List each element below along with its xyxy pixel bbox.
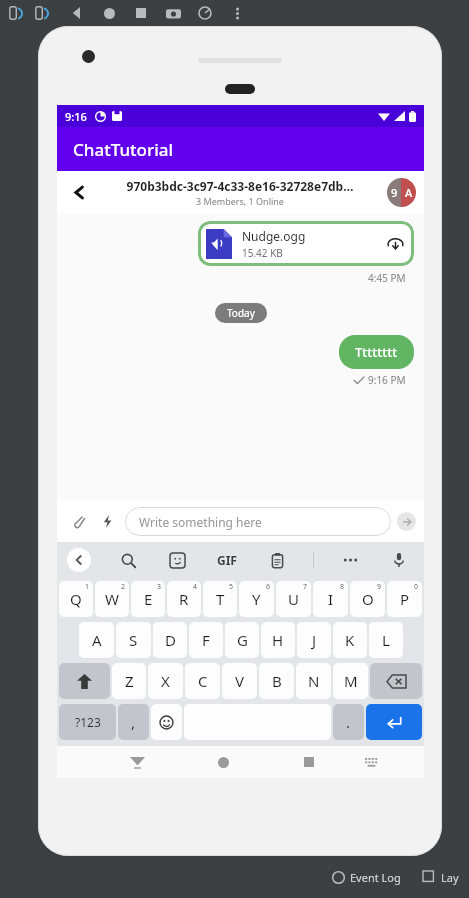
- button[interactable]: C: [185, 663, 220, 699]
- button[interactable]: S: [116, 622, 151, 658]
- staticText: P: [400, 589, 410, 609]
- staticText: GIF: [217, 552, 237, 568]
- button[interactable]: Rotate left: [6, 3, 26, 23]
- button[interactable]: History: [194, 2, 216, 24]
- staticText: 8: [340, 582, 345, 592]
- button[interactable]: ,: [118, 704, 149, 740]
- button[interactable]: I: [313, 581, 348, 617]
- button[interactable]: Attach file: [65, 508, 91, 534]
- staticText: ChatTutorial: [73, 138, 174, 161]
- staticText: 2: [121, 582, 126, 592]
- button[interactable]: GIF: [213, 548, 241, 572]
- button[interactable]: Backspace: [370, 663, 422, 699]
- staticText: R: [179, 589, 189, 609]
- button[interactable]: Nudge.ogg: [198, 221, 414, 266]
- button[interactable]: O: [350, 581, 385, 617]
- staticText: 3: [157, 582, 162, 592]
- button[interactable]: Home: [199, 746, 247, 778]
- button[interactable]: .: [333, 704, 364, 740]
- staticText: S: [129, 630, 138, 650]
- staticText: Nudge.ogg: [242, 228, 306, 244]
- button[interactable]: Recent apps: [285, 746, 333, 778]
- staticText: Z: [125, 671, 134, 691]
- button[interactable]: K: [333, 622, 367, 658]
- button[interactable]: A: [79, 622, 114, 658]
- staticText: H: [272, 630, 284, 650]
- staticText: 1: [85, 582, 90, 592]
- staticText: Y: [252, 589, 261, 609]
- button[interactable]: L: [369, 622, 403, 658]
- staticText: E: [144, 589, 153, 609]
- button[interactable]: D: [153, 622, 187, 658]
- staticText: W: [105, 589, 119, 609]
- button[interactable]: P: [387, 581, 422, 617]
- button[interactable]: V: [222, 663, 257, 699]
- button[interactable]: Home: [98, 2, 120, 24]
- button[interactable]: R: [167, 581, 201, 617]
- button[interactable]: Write something here: [125, 507, 391, 536]
- button[interactable]: Shift: [59, 663, 110, 699]
- button[interactable]: Group avatar: [387, 178, 416, 207]
- button[interactable]: J: [297, 622, 331, 658]
- button[interactable]: Tttttttt: [339, 335, 414, 369]
- button[interactable]: Clipboard: [264, 547, 290, 573]
- staticText: Event Log: [350, 870, 401, 885]
- staticText: 15.42 KB: [242, 246, 283, 260]
- button[interactable]: Emoji: [151, 704, 182, 740]
- button[interactable]: Enter: [366, 704, 422, 740]
- button[interactable]: Lay: [417, 870, 465, 885]
- button[interactable]: Rotate right: [32, 3, 52, 23]
- button[interactable]: X: [148, 663, 183, 699]
- button[interactable]: E: [131, 581, 165, 617]
- staticText: D: [165, 630, 176, 650]
- button[interactable]: Recents: [130, 2, 152, 24]
- button[interactable]: F: [189, 622, 223, 658]
- button[interactable]: Switch keyboard: [347, 746, 395, 778]
- staticText: Tttttttt: [355, 343, 398, 361]
- staticText: O: [362, 589, 374, 609]
- staticText: 9:16 PM: [368, 373, 406, 387]
- button[interactable]: More options: [226, 2, 248, 24]
- button[interactable]: Q: [59, 581, 93, 617]
- staticText: A: [92, 630, 102, 650]
- button[interactable]: Back: [66, 2, 88, 24]
- staticText: 0: [414, 582, 419, 592]
- button[interactable]: M: [333, 663, 368, 699]
- staticText: Today: [227, 306, 255, 320]
- staticText: 9: [391, 185, 398, 200]
- staticText: 3 Members, 1 Online: [97, 195, 383, 207]
- staticText: V: [235, 671, 245, 691]
- staticText: 970b3bdc-3c97-4c33-8e16-32728e7db…: [97, 178, 383, 194]
- button[interactable]: W: [95, 581, 129, 617]
- button[interactable]: T: [203, 581, 237, 617]
- staticText: ?123: [75, 714, 101, 730]
- button[interactable]: H: [261, 622, 295, 658]
- button[interactable]: Z: [112, 663, 146, 699]
- staticText: K: [345, 630, 355, 650]
- staticText: 6: [266, 582, 271, 592]
- button[interactable]: Event Log: [326, 870, 407, 885]
- button[interactable]: G: [225, 622, 259, 658]
- staticText: I: [328, 589, 334, 609]
- button[interactable]: Quick actions: [95, 509, 119, 533]
- button[interactable]: Search: [115, 547, 141, 573]
- staticText: J: [312, 630, 317, 650]
- button[interactable]: More: [337, 547, 363, 573]
- button[interactable]: Back: [65, 178, 93, 206]
- button[interactable]: Voice input: [386, 547, 412, 573]
- button[interactable]: Y: [239, 581, 274, 617]
- staticText: 9: [377, 582, 382, 592]
- staticText: Write something here: [139, 514, 262, 530]
- button[interactable]: U: [276, 581, 311, 617]
- button[interactable]: B: [259, 663, 294, 699]
- button[interactable]: Download: [384, 233, 406, 255]
- button[interactable]: N: [296, 663, 331, 699]
- button[interactable]: Back: [113, 746, 161, 778]
- button[interactable]: ?123: [59, 704, 116, 740]
- button[interactable]: Screenshot: [162, 2, 184, 24]
- button[interactable]: Stickers: [164, 547, 190, 573]
- button[interactable]: Send: [397, 512, 416, 531]
- staticText: F: [202, 630, 210, 650]
- button[interactable]: Expand toolbar: [67, 548, 91, 572]
